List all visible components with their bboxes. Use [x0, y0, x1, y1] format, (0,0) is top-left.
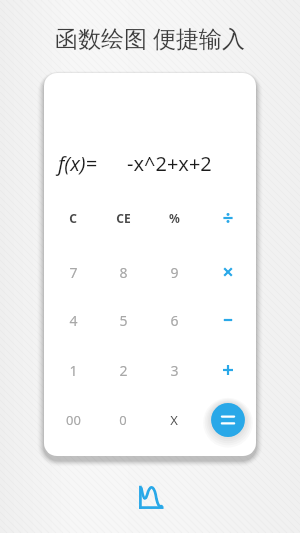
button[interactable]: 2 — [100, 350, 146, 390]
staticText: CE — [116, 210, 131, 226]
staticText: C — [69, 210, 77, 226]
button[interactable]: Minus — [208, 300, 248, 340]
staticText: 函数绘图 便捷输入 — [55, 22, 245, 53]
staticText: 5 — [119, 311, 128, 330]
staticText: 2 — [119, 361, 128, 380]
staticText: -x^2+x+2 — [127, 150, 212, 177]
button[interactable]: 00 — [50, 400, 96, 440]
staticText: 1 — [69, 361, 78, 380]
button[interactable]: CE — [100, 198, 146, 238]
staticText: 4 — [69, 311, 78, 330]
button[interactable]: % — [151, 198, 197, 238]
staticText: 8 — [119, 263, 128, 282]
staticText: 9 — [170, 263, 179, 282]
button[interactable]: 6 — [151, 300, 197, 340]
staticText: 6 — [170, 311, 179, 330]
button[interactable]: 3 — [151, 350, 197, 390]
button[interactable]: 8 — [100, 252, 146, 292]
button[interactable]: 4 — [50, 300, 96, 340]
staticText: 7 — [69, 263, 78, 282]
button[interactable]: C — [50, 198, 96, 238]
button[interactable]: Plot graph — [134, 482, 166, 514]
staticText: 3 — [170, 361, 179, 380]
button[interactable]: 7 — [50, 252, 96, 292]
button[interactable]: Equals — [206, 398, 250, 442]
button[interactable]: 1 — [50, 350, 96, 390]
button[interactable]: 0 — [100, 400, 146, 440]
staticText: f(x)= — [58, 150, 98, 177]
staticText: 0 — [119, 411, 127, 429]
button[interactable]: Divide — [208, 198, 248, 238]
button[interactable]: 9 — [151, 252, 197, 292]
staticText: 00 — [66, 411, 81, 429]
button[interactable]: X — [151, 400, 197, 440]
staticText: X — [170, 411, 178, 429]
button[interactable]: Multiply — [208, 252, 248, 292]
staticText: % — [169, 210, 180, 226]
button[interactable]: Plus — [208, 350, 248, 390]
button[interactable]: 5 — [100, 300, 146, 340]
